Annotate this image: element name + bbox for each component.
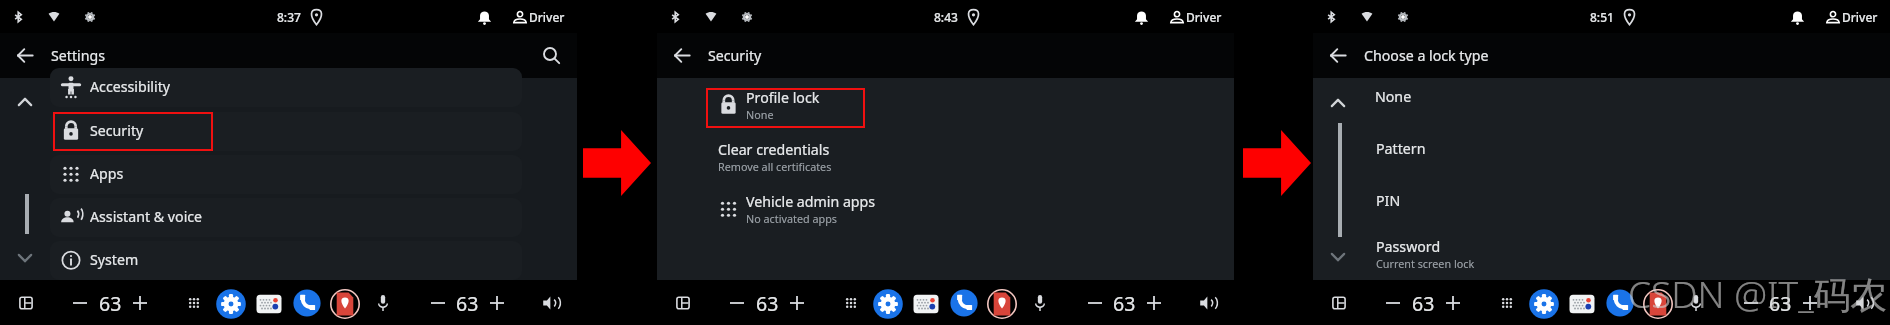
button[interactable]: Scroll down [12,245,38,271]
button[interactable]: Radio [1567,289,1597,319]
button[interactable]: Accessibility [50,68,522,107]
staticText: Security [708,46,762,65]
button[interactable]: Search [536,40,567,71]
button[interactable]: All apps [836,288,866,318]
button[interactable]: Phone [949,288,979,318]
button[interactable]: All apps [1492,288,1522,318]
button[interactable]: Phone [292,288,322,318]
button[interactable]: Volume up [125,288,155,318]
staticText: None [1375,87,1412,106]
button[interactable]: Volume down [1378,288,1408,318]
staticText: Apps [90,164,124,183]
button[interactable]: Apps [50,155,522,194]
button[interactable]: Volume up [782,288,812,318]
button[interactable]: Back [667,40,698,71]
button[interactable]: Back [10,40,41,71]
button[interactable]: All apps [179,288,209,318]
staticText: Choose a lock type [1364,46,1489,65]
button[interactable]: Scroll up [12,89,38,115]
button[interactable]: System [50,241,522,280]
button[interactable]: Split screen [668,288,698,318]
button[interactable]: Microphone [1681,288,1711,318]
button[interactable]: Split screen [11,288,41,318]
button[interactable]: Volume down [722,288,752,318]
button[interactable]: Maps [330,289,360,319]
button[interactable]: Volume down [65,288,95,318]
staticText: 8:37 [277,9,301,25]
button[interactable]: Assistant & voice [50,198,522,237]
button[interactable]: Settings [873,289,903,319]
button[interactable]: Volume [536,288,566,318]
staticText: 8:51 [1590,9,1614,25]
staticText: 63 [1412,290,1435,317]
staticText: Driver [1186,9,1222,25]
button[interactable]: Volume down [423,288,453,318]
button[interactable]: Microphone [1025,288,1055,318]
button[interactable]: Volume [1849,288,1879,318]
button[interactable]: Back [1323,40,1354,71]
button[interactable]: Radio [911,289,941,319]
button[interactable]: Volume up [1139,288,1169,318]
staticText: 63 [756,290,779,317]
staticText: Vehicle admin apps [746,192,876,211]
staticText: System [90,250,139,269]
button[interactable]: Volume up [1795,288,1825,318]
button[interactable]: None [1363,78,1835,117]
staticText: Password [1376,237,1441,256]
staticText: 63 [1113,290,1136,317]
staticText: Current screen lock [1376,256,1475,271]
button[interactable]: PIN [1363,182,1835,221]
staticText: CSDN @IT_码农 [1628,268,1888,319]
staticText: None [746,107,774,122]
staticText: No activated apps [746,211,837,226]
button[interactable]: Clear credentials [707,138,1179,177]
staticText: Remove all certificates [718,159,832,174]
staticText: Clear credentials [718,140,830,159]
button[interactable]: Profile lock [707,86,1179,125]
button[interactable]: Volume up [1438,288,1468,318]
button[interactable]: Settings [216,289,246,319]
staticText: Pattern [1376,139,1426,158]
staticText: PIN [1376,191,1401,210]
button[interactable]: Maps [987,289,1017,319]
button[interactable]: Scroll down [1325,244,1351,270]
staticText: 63 [99,290,122,317]
staticText: Assistant & voice [90,207,203,226]
button[interactable]: Scroll up [1325,90,1351,116]
staticText: 63 [456,290,479,317]
button[interactable]: Settings [1529,289,1559,319]
button[interactable]: Radio [254,289,284,319]
staticText: 63 [1769,290,1792,317]
button[interactable]: Volume down [1736,288,1766,318]
staticText: 8:43 [934,9,958,25]
button[interactable]: Microphone [368,288,398,318]
button[interactable]: Volume [1193,288,1223,318]
button[interactable]: Password [1363,235,1835,274]
button[interactable]: Maps [1643,289,1673,319]
staticText: Driver [529,9,565,25]
button[interactable]: Security [50,112,522,151]
button[interactable]: Volume up [482,288,512,318]
staticText: Security [90,121,144,140]
button[interactable]: Phone [1605,288,1635,318]
button[interactable]: Volume down [1080,288,1110,318]
staticText: Profile lock [746,88,820,107]
button[interactable]: Pattern [1363,130,1835,169]
staticText: Accessibility [90,77,171,96]
staticText: Driver [1842,9,1878,25]
staticText: Settings [51,46,105,65]
button[interactable]: Vehicle admin apps [707,190,1179,229]
button[interactable]: Split screen [1324,288,1354,318]
